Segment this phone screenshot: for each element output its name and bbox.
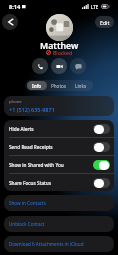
- button[interactable]: Show in Shared with You: [4, 156, 114, 173]
- button[interactable]: Hide Alerts: [4, 120, 114, 137]
- staticText: Info: [32, 83, 42, 89]
- button[interactable]: Contact photo: [46, 14, 73, 41]
- staticText: Send Read Receipts: [9, 144, 53, 150]
- button[interactable]: Video call: [51, 58, 67, 74]
- staticText: Blocked: [53, 49, 73, 56]
- button[interactable]: Send Read Receipts: [4, 138, 114, 155]
- button[interactable]: Edit: [95, 16, 114, 28]
- staticText: Share Focus Status: [9, 180, 51, 186]
- button[interactable]: Links: [71, 81, 91, 90]
- button[interactable]: phone: [4, 96, 114, 116]
- button[interactable]: Share Focus Status: [4, 174, 114, 191]
- staticText: phone: [9, 99, 22, 105]
- staticText: LTE: [91, 4, 99, 10]
- staticText: Show in Contacts: [9, 200, 46, 206]
- button[interactable]: Download 6 Attachments in iCloud: [4, 236, 114, 252]
- button[interactable]: Photos: [49, 81, 69, 90]
- button[interactable]: Message: [70, 58, 86, 74]
- staticText: Matthew: [40, 40, 79, 52]
- staticText: Edit: [100, 19, 110, 26]
- button[interactable]: Info: [27, 81, 47, 90]
- staticText: Unblock Contact: [9, 221, 45, 227]
- staticText: Photos: [51, 83, 67, 89]
- button[interactable]: Call: [32, 58, 48, 74]
- staticText: Show in Shared with You: [9, 162, 64, 168]
- button[interactable]: Show in Contacts: [4, 195, 114, 211]
- staticText: 8:14: [9, 3, 21, 11]
- staticText: Hide Alerts: [9, 126, 34, 132]
- staticText: +1 (512) 635-9871: [9, 106, 55, 113]
- button[interactable]: Back: [2, 14, 18, 30]
- staticText: Download 6 Attachments in iCloud: [9, 241, 84, 247]
- button[interactable]: Unblock Contact: [4, 216, 114, 232]
- staticText: Links: [75, 83, 87, 89]
